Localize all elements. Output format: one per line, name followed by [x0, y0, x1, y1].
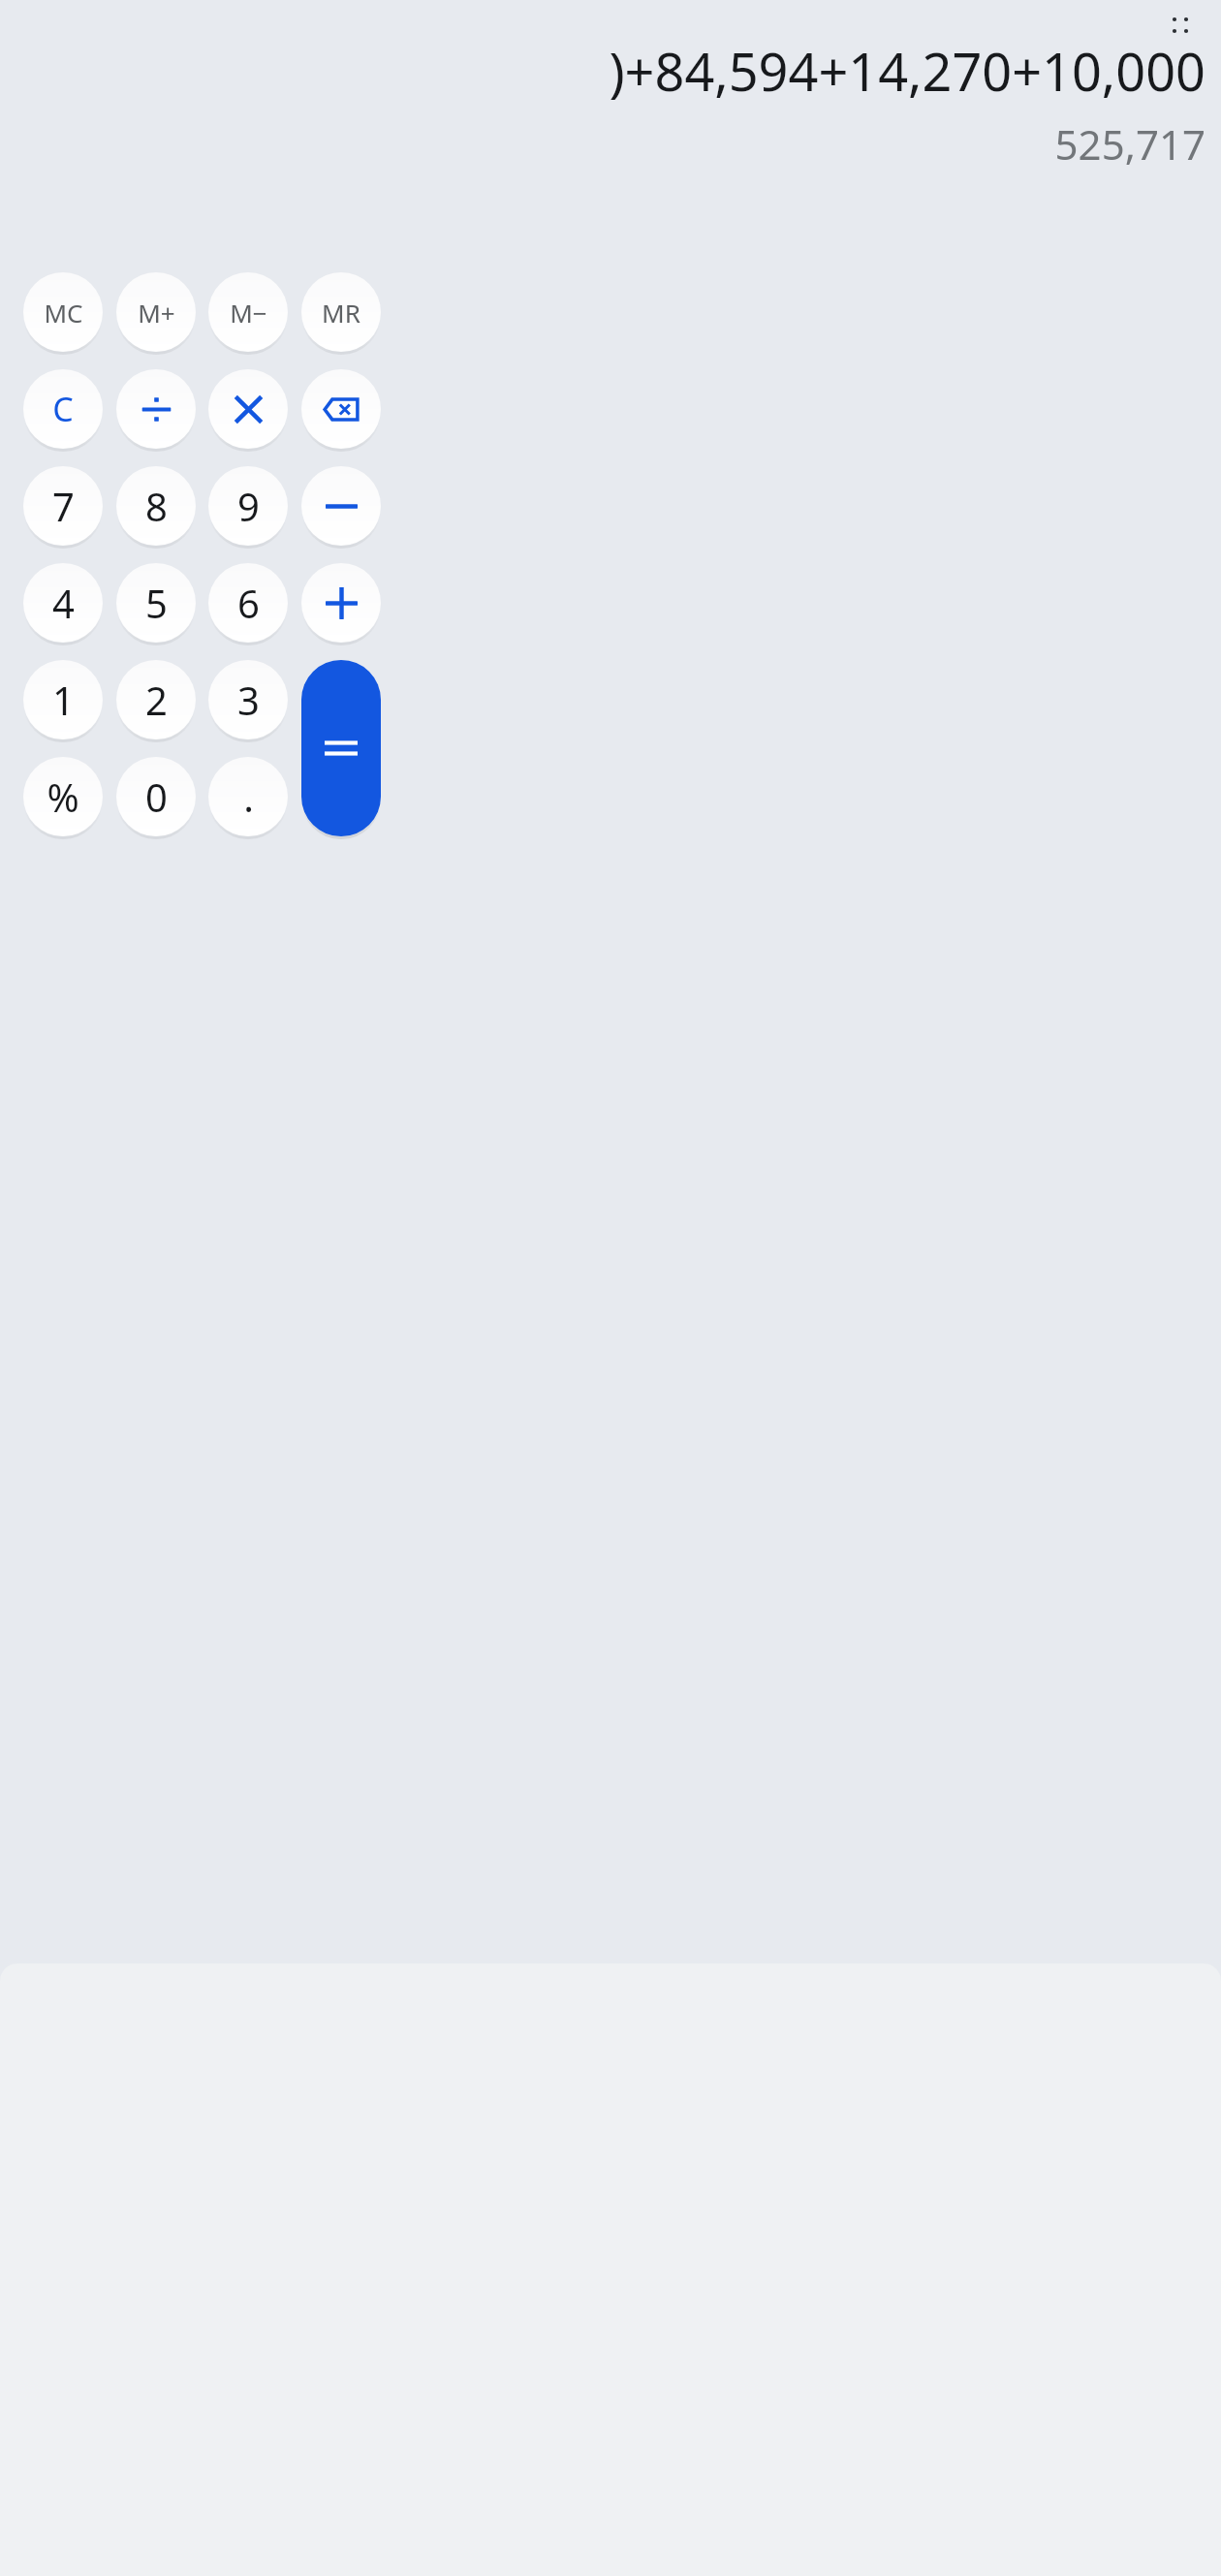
button[interactable]: 0 — [116, 757, 196, 836]
button[interactable]: 8 — [116, 466, 196, 546]
staticText: MC — [44, 296, 83, 330]
staticText: % — [47, 770, 79, 823]
button[interactable]: 5 — [116, 563, 196, 643]
button[interactable]: 1 — [23, 660, 103, 739]
staticText: 8 — [145, 480, 168, 532]
staticText: 525,717 — [1054, 116, 1205, 172]
button[interactable]: Plus — [301, 563, 381, 643]
button[interactable]: MC — [23, 272, 103, 352]
staticText: C — [52, 387, 74, 431]
staticText: 0 — [145, 770, 168, 823]
button[interactable]: C — [23, 369, 103, 449]
button[interactable]: 2 — [116, 660, 196, 739]
staticText: M− — [230, 296, 267, 330]
button[interactable]: 6 — [208, 563, 288, 643]
button[interactable]: M+ — [116, 272, 196, 352]
staticText: 1 — [52, 674, 75, 726]
staticText: 5 — [145, 577, 168, 629]
button[interactable]: . — [208, 757, 288, 836]
staticText: . — [243, 770, 254, 823]
staticText: 4 — [52, 577, 75, 629]
staticText: MR — [322, 296, 360, 330]
button[interactable]: M− — [208, 272, 288, 352]
button[interactable]: Minus — [301, 466, 381, 546]
button[interactable]: Divide — [116, 369, 196, 449]
staticText: 6 — [237, 577, 260, 629]
button[interactable]: Backspace — [301, 369, 381, 449]
button[interactable]: 9 — [208, 466, 288, 546]
button[interactable]: 4 — [23, 563, 103, 643]
staticText: 9 — [237, 480, 260, 532]
button[interactable]: History — [1157, 2, 1204, 48]
button[interactable]: Multiply — [208, 369, 288, 449]
staticText: M+ — [138, 296, 175, 330]
staticText: 2 — [145, 674, 168, 726]
staticText: 7 — [52, 480, 75, 532]
button[interactable]: 7 — [23, 466, 103, 546]
staticText: 3 — [237, 674, 260, 726]
button[interactable]: 3 — [208, 660, 288, 739]
button[interactable]: MR — [301, 272, 381, 352]
button[interactable]: Equals — [301, 660, 381, 836]
button[interactable]: % — [23, 757, 103, 836]
staticText: )+84,594+14,270+10,000 — [609, 35, 1205, 107]
